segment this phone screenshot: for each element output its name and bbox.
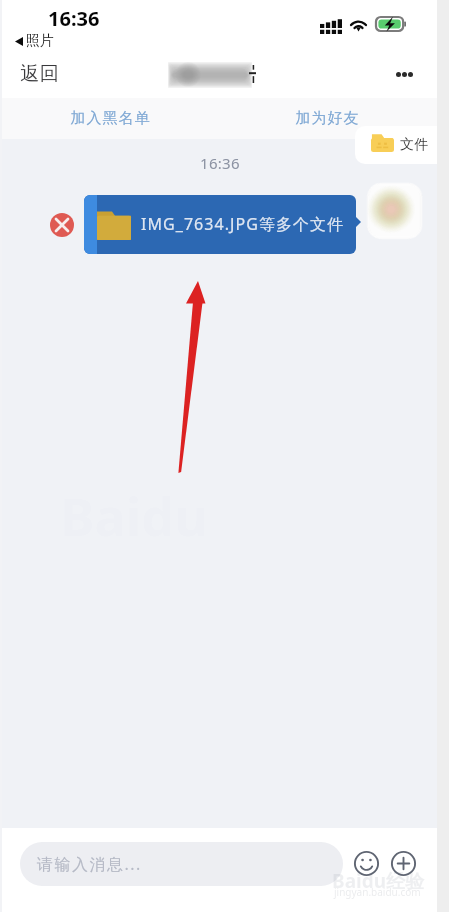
- staticText: 16:36: [200, 153, 240, 173]
- button[interactable]: 请输入消息...: [20, 842, 343, 886]
- staticText: 加入黑名单: [70, 109, 150, 128]
- staticText: 返回: [20, 62, 59, 86]
- button[interactable]: 加为好友: [217, 98, 436, 139]
- staticText: 16:36: [48, 5, 100, 32]
- staticText: jingyan.baidu.com: [334, 885, 421, 899]
- button[interactable]: More options: [386, 56, 422, 92]
- staticText: Baidu经验: [332, 868, 425, 894]
- staticText: IMG_7634.JPG等多个文件: [141, 213, 345, 235]
- staticText: 照片: [26, 32, 54, 50]
- staticText: 文件: [400, 136, 429, 154]
- button[interactable]: 返回: [0, 52, 77, 96]
- button[interactable]: More actions: [385, 845, 421, 881]
- staticText: 加为好友: [295, 109, 359, 128]
- button[interactable]: 加入黑名单: [1, 98, 219, 139]
- button[interactable]: 文件: [355, 126, 449, 164]
- button[interactable]: Emoji: [348, 845, 384, 881]
- button[interactable]: IMG_7634.JPG等多个文件: [84, 195, 356, 254]
- staticText: 请输入消息...: [37, 853, 142, 875]
